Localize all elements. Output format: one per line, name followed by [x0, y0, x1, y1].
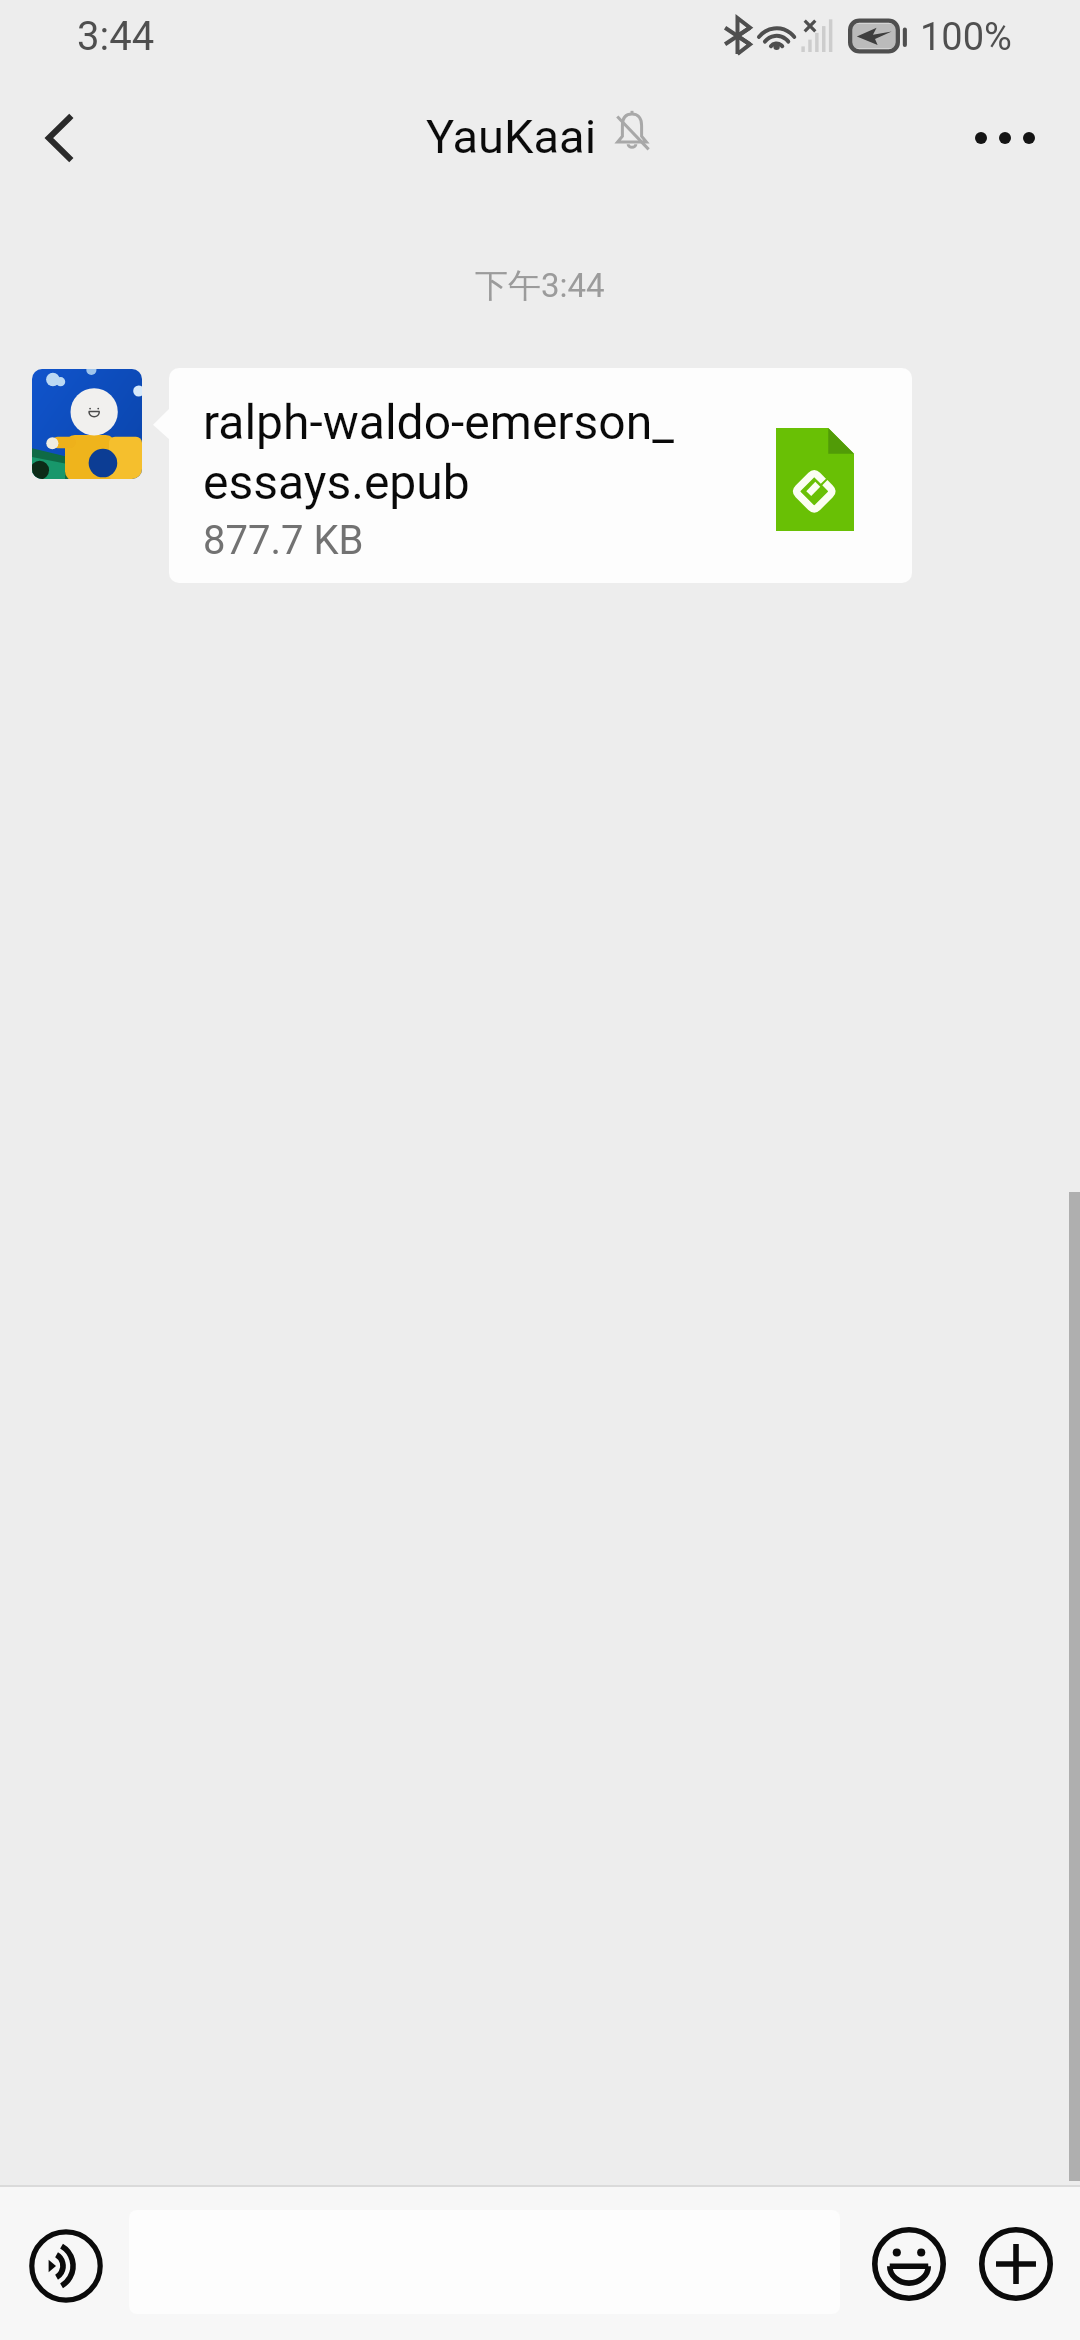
button[interactable]: More functions: [969, 2217, 1063, 2311]
button[interactable]: Contact avatar: [32, 369, 142, 479]
staticText: 3:44: [77, 13, 155, 60]
button[interactable]: ralph-waldo-emerson_ essays.epub: [169, 368, 912, 583]
staticText: ralph-waldo-emerson_ essays.epub: [203, 394, 674, 510]
staticText: 下午3:44: [475, 265, 605, 307]
button[interactable]: More options: [955, 88, 1055, 188]
staticText: YauKaai: [426, 109, 597, 164]
button[interactable]: Back: [0, 88, 114, 188]
staticText: 877.7 KB: [203, 517, 364, 564]
staticText: 100%: [920, 15, 1012, 60]
button[interactable]: Voice message: [19, 2219, 113, 2313]
button[interactable]: Emoji: [862, 2217, 956, 2311]
